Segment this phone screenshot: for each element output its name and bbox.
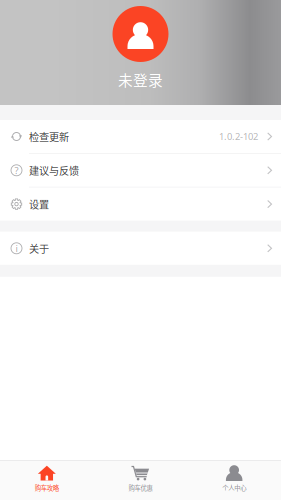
button[interactable]: 设置 <box>0 188 281 221</box>
button[interactable]: ? <box>0 154 281 187</box>
staticText: 购车优惠 <box>128 483 152 492</box>
staticText: ? <box>14 164 18 176</box>
staticText: 检查更新 <box>29 129 69 144</box>
button[interactable]: i <box>0 232 281 265</box>
button[interactable]: 个人中心 <box>187 461 281 500</box>
staticText: 建议与反馈 <box>29 163 79 178</box>
staticText: 购车攻略 <box>35 483 59 492</box>
button[interactable]: 购车攻略 <box>0 461 94 500</box>
button[interactable]: 购车优惠 <box>94 461 187 500</box>
button[interactable]: 检查更新 <box>0 120 281 153</box>
button[interactable] <box>112 6 168 62</box>
staticText: 关于 <box>29 241 49 256</box>
staticText: 个人中心 <box>222 483 246 492</box>
staticText: 设置 <box>29 197 49 211</box>
staticText: 1.0.2-102 <box>219 130 258 143</box>
staticText: i <box>15 242 17 254</box>
staticText: 未登录 <box>118 69 163 90</box>
